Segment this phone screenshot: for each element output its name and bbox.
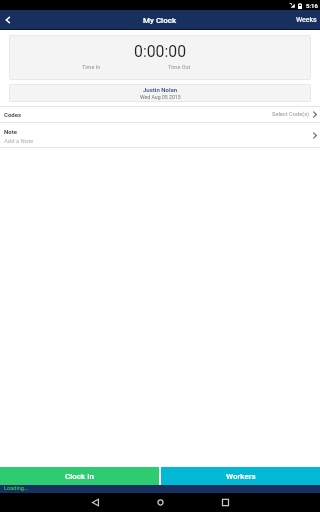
- staticText: Weeks: [296, 16, 317, 24]
- staticText: Time In: [82, 64, 101, 70]
- staticText: 0:00:00: [134, 42, 187, 61]
- staticText: Loading...: [4, 485, 29, 492]
- button[interactable]: Codes: [0, 107, 320, 122]
- staticText: Note: [4, 128, 17, 135]
- staticText: Select Code(s): [272, 111, 310, 118]
- button[interactable]: Workers: [161, 467, 320, 485]
- staticText: 5:16: [306, 2, 318, 9]
- staticText: Justin Nolan: [143, 86, 178, 93]
- button[interactable]: Note: [0, 123, 320, 147]
- staticText: Clock In: [65, 472, 94, 481]
- staticText: Wed Aug 05 2015: [140, 94, 181, 100]
- button[interactable]: Clock In: [0, 467, 159, 485]
- button[interactable]: Home: [143, 493, 177, 512]
- staticText: Workers: [226, 472, 256, 481]
- staticText: My Clock: [143, 16, 177, 25]
- button[interactable]: Back: [78, 493, 112, 512]
- staticText: Add a Note: [4, 138, 34, 145]
- staticText: Codes: [4, 111, 22, 118]
- staticText: Time Out: [168, 64, 191, 70]
- button[interactable]: Recents: [208, 493, 242, 512]
- button[interactable]: Weeks: [291, 10, 320, 30]
- button[interactable]: Back: [0, 10, 15, 30]
- button[interactable]: Justin Nolan: [9, 84, 311, 102]
